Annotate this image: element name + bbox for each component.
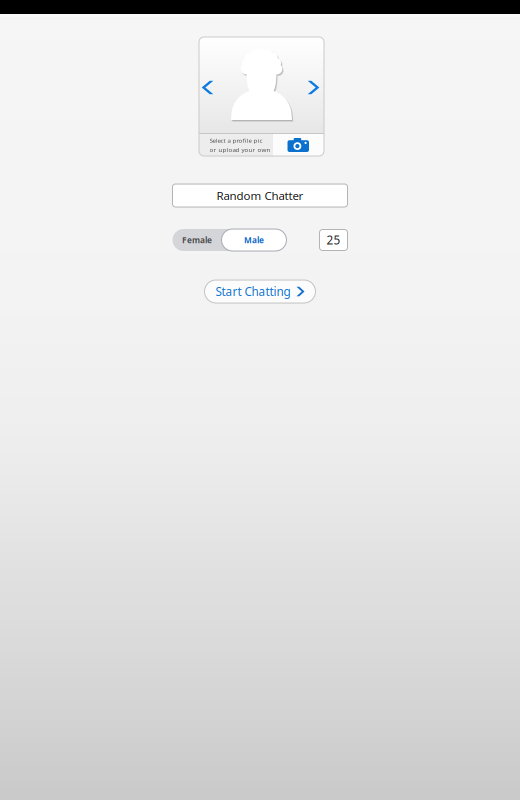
button[interactable]: Male bbox=[221, 229, 286, 251]
button[interactable]: Random Chatter bbox=[172, 184, 347, 207]
staticText: Male bbox=[244, 234, 264, 246]
button[interactable]: Female bbox=[172, 229, 221, 251]
staticText: or upload your own bbox=[209, 145, 270, 154]
button[interactable]: Take a photo bbox=[273, 134, 324, 156]
button[interactable]: Previous profile picture bbox=[199, 67, 216, 107]
button[interactable]: Start Chatting bbox=[204, 280, 315, 303]
staticText: Start Chatting bbox=[215, 283, 290, 299]
button[interactable]: Next profile picture bbox=[303, 67, 324, 107]
staticText: Female bbox=[182, 234, 212, 246]
staticText: 25 bbox=[326, 232, 340, 248]
staticText: Random Chatter bbox=[216, 188, 303, 203]
button[interactable]: 25 bbox=[319, 229, 347, 250]
staticText: Select a profile pic bbox=[209, 136, 262, 144]
